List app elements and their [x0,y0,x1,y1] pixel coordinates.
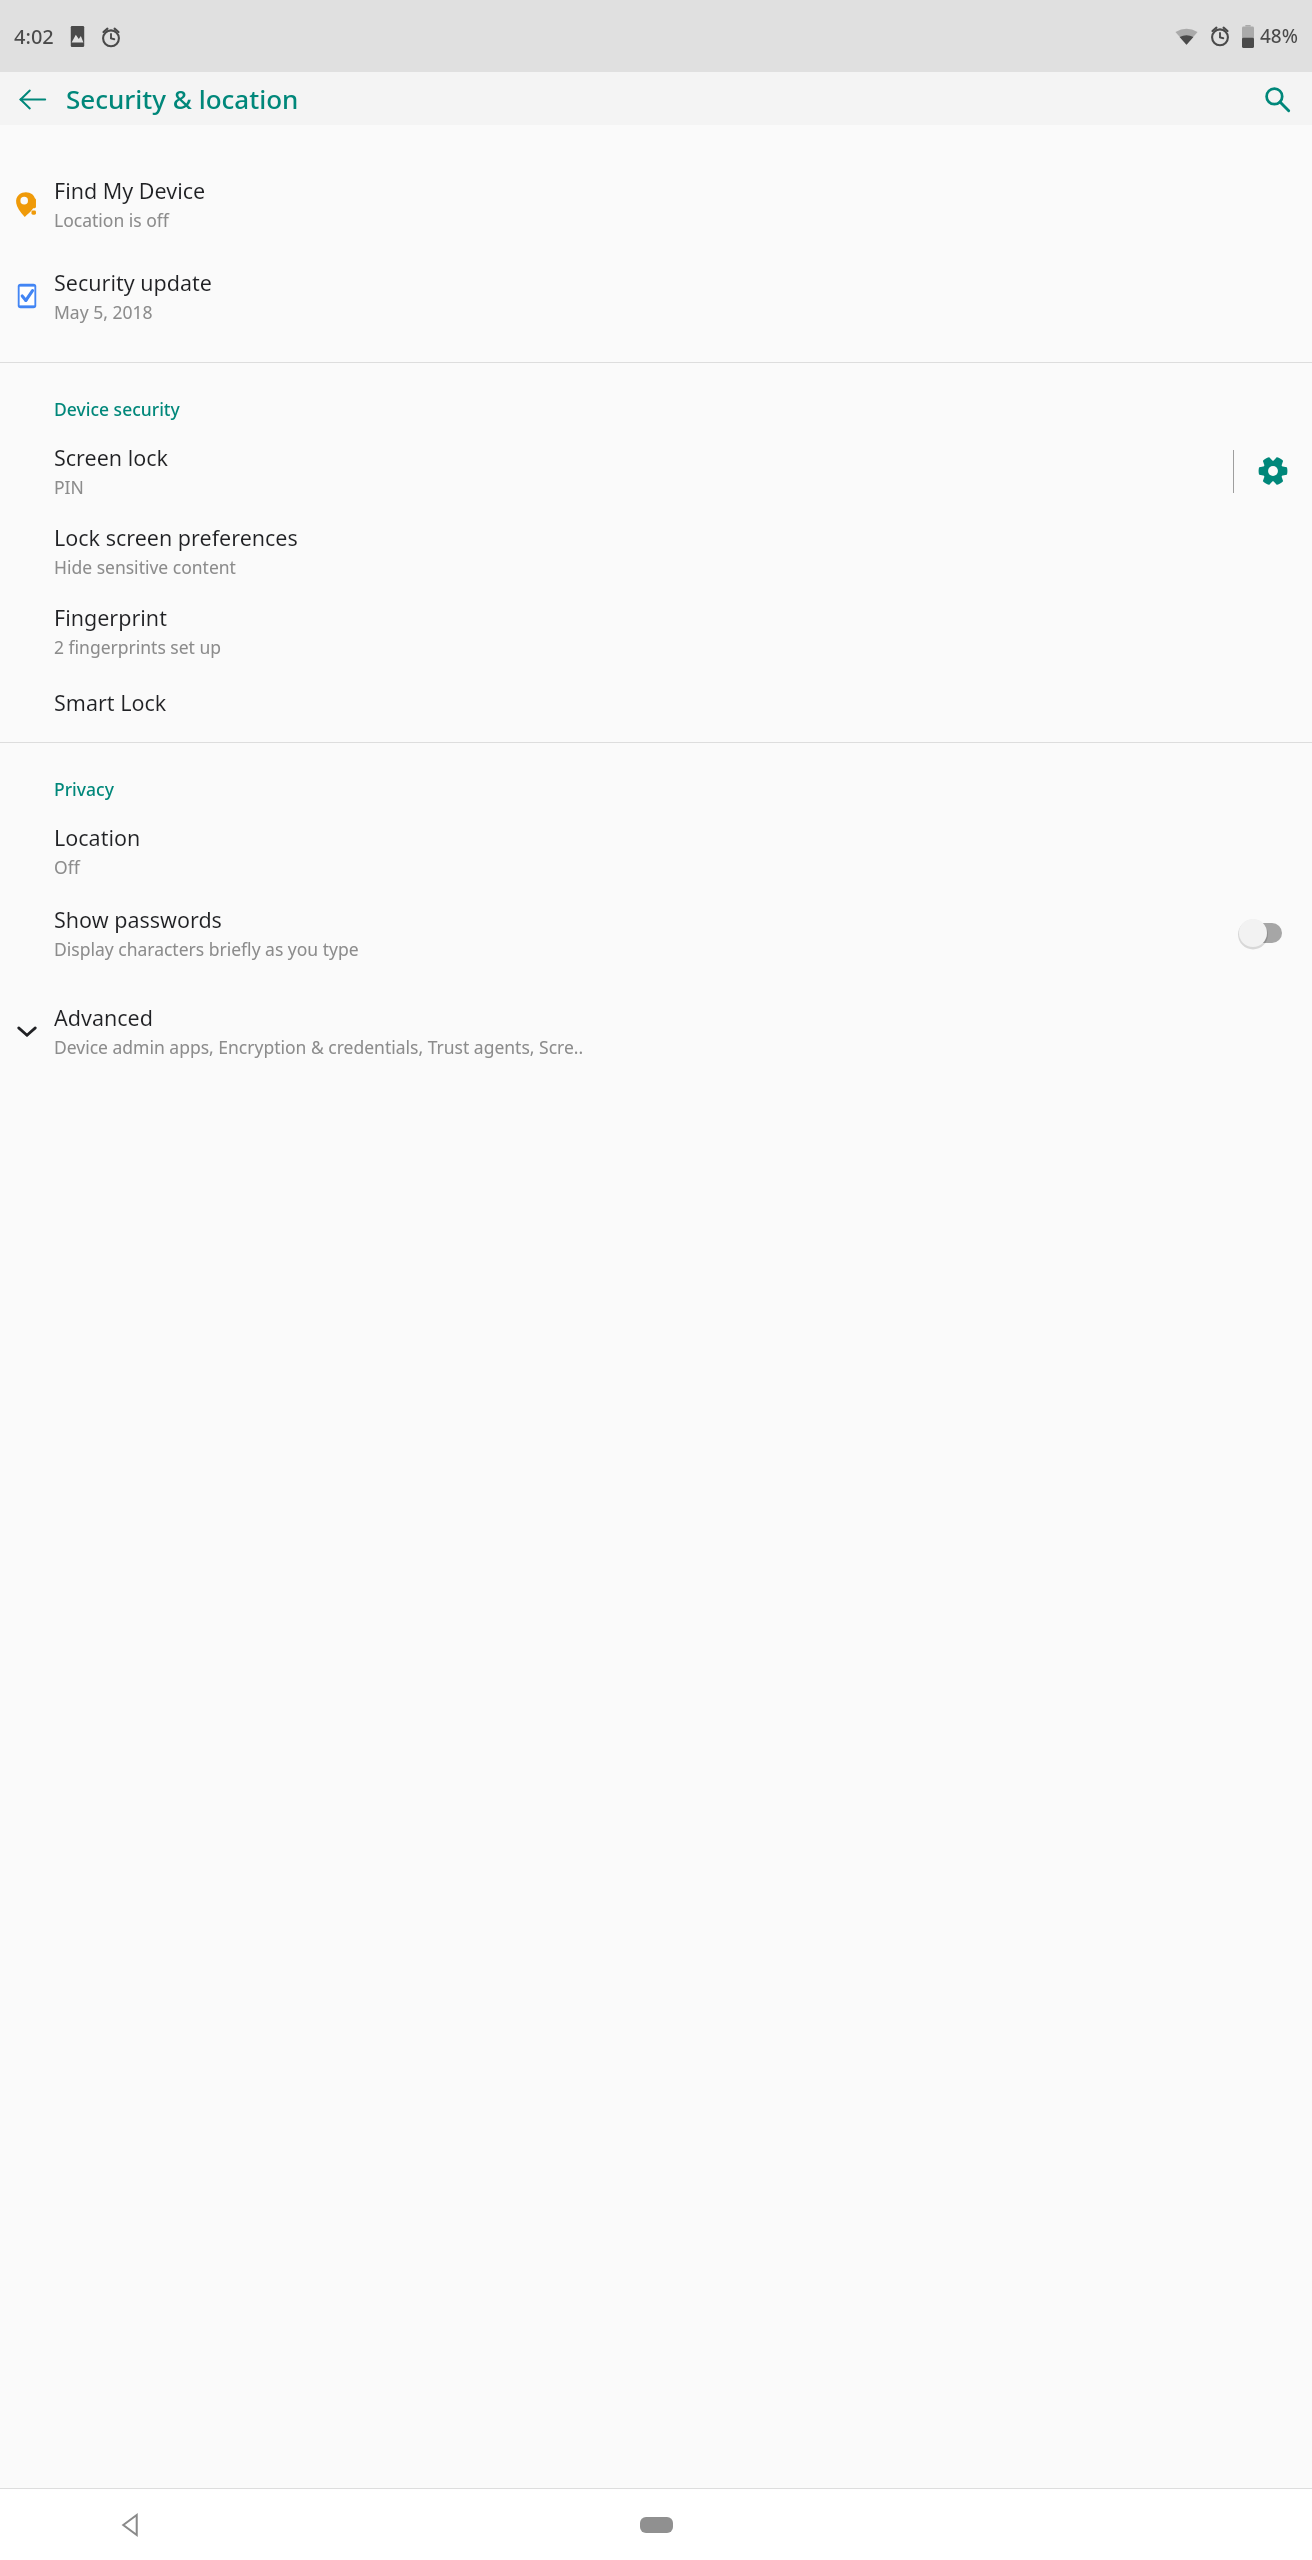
staticText: 2 fingerprints set up [54,635,222,659]
staticText: Security update [54,268,212,297]
staticText: Show passwords [54,905,222,934]
staticText: Device admin apps, Encryption & credenti… [54,1035,584,1059]
button[interactable]: Back [8,75,56,123]
button[interactable]: Fingerprint [0,591,1312,671]
staticText: Off [54,855,80,879]
button[interactable]: Search [1253,75,1301,123]
staticText: 4:02 [14,23,54,50]
staticText: Device security [54,397,180,421]
button[interactable]: Lock screen preferences [0,511,1312,591]
button[interactable]: Screen lock settings [1234,431,1312,511]
staticText: Screen lock [54,443,169,472]
staticText: Fingerprint [54,603,167,632]
button[interactable]: Home [626,2503,686,2547]
staticText: Lock screen preferences [54,523,298,552]
button[interactable]: Back [106,2501,154,2549]
staticText: Privacy [54,777,114,801]
staticText: May 5, 2018 [54,300,153,324]
staticText: Location is off [54,208,169,232]
button[interactable]: Advanced [0,989,1312,1073]
staticText: Find My Device [54,176,206,205]
staticText: Security & location [66,81,299,116]
staticText: Location [54,823,141,852]
button[interactable]: Show passwords [0,891,1312,975]
staticText: Hide sensitive content [54,555,236,579]
staticText: Display characters briefly as you type [54,937,359,961]
staticText: Smart Lock [54,688,167,717]
staticText: Advanced [54,1003,153,1032]
staticText: PIN [54,475,84,499]
button[interactable]: Screen lock [0,431,1233,511]
staticText: 48% [1260,23,1298,49]
button[interactable]: Find My Device [0,164,1312,244]
button[interactable]: Security update [0,256,1312,336]
button[interactable]: Smart Lock [0,671,1312,734]
button[interactable]: Location [0,811,1312,891]
